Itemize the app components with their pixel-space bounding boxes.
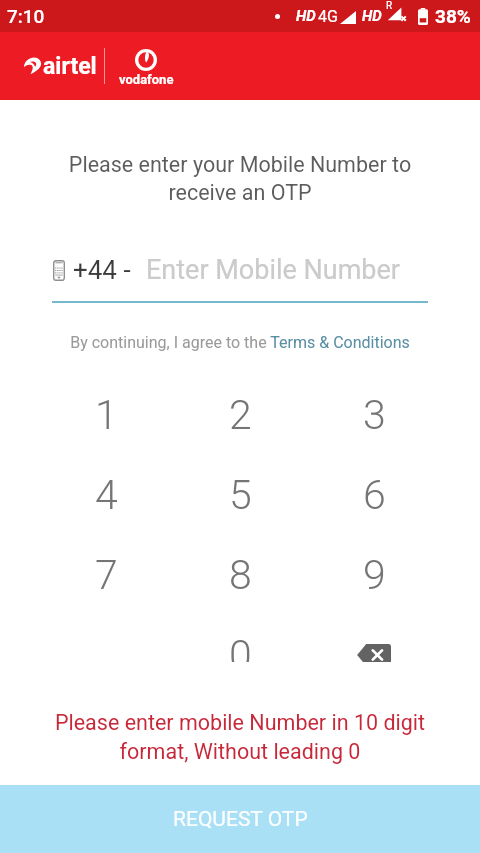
- button[interactable]: 7: [66, 545, 146, 605]
- staticText: HD: [296, 7, 316, 25]
- button[interactable]: 6: [334, 465, 414, 525]
- staticText: 8: [229, 551, 252, 599]
- button[interactable]: REQUEST OTP: [0, 785, 480, 853]
- staticText: 38%: [435, 5, 471, 27]
- staticText: 2: [229, 391, 252, 439]
- button[interactable]: 4: [66, 465, 146, 525]
- staticText: Enter Mobile Number: [146, 254, 400, 286]
- button[interactable]: 9: [334, 545, 414, 605]
- button[interactable]: 5: [200, 465, 280, 525]
- staticText: 3: [363, 391, 386, 439]
- staticText: 4: [95, 471, 118, 519]
- staticText: +44 -: [73, 255, 131, 285]
- staticText: 9: [363, 551, 386, 599]
- staticText: 5: [229, 471, 252, 519]
- staticText: 7:10: [7, 5, 45, 27]
- staticText: 6: [363, 471, 386, 519]
- staticText: 7: [95, 551, 118, 599]
- button[interactable]: 3: [334, 385, 414, 445]
- staticText: R: [386, 0, 393, 12]
- staticText: By continuing, I agree to the Terms & Co…: [0, 333, 480, 352]
- staticText: vodafone: [119, 72, 174, 87]
- staticText: Please enter your Mobile Number to recei…: [0, 152, 480, 205]
- staticText: airtel: [43, 53, 97, 80]
- staticText: Please enter mobile Number in 10 digit f…: [0, 710, 480, 764]
- staticText: 4G: [318, 7, 338, 26]
- staticText: 0: [229, 631, 252, 662]
- button[interactable]: 1: [66, 385, 146, 445]
- button[interactable]: Backspace: [334, 625, 414, 662]
- button[interactable]: 8: [200, 545, 280, 605]
- staticText: REQUEST OTP: [173, 807, 308, 832]
- button[interactable]: 0: [200, 625, 280, 662]
- staticText: HD: [362, 7, 382, 25]
- staticText: 1: [95, 391, 118, 439]
- button[interactable]: 2: [200, 385, 280, 445]
